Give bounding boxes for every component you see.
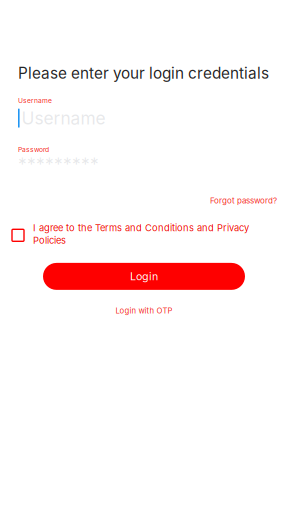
button[interactable]: I agree to the Terms and Conditions and … xyxy=(0,222,255,246)
staticText: Please enter your login credentials xyxy=(18,64,269,83)
staticText: I agree to the Terms and Conditions and … xyxy=(33,222,249,246)
staticText: Username xyxy=(18,97,52,105)
staticText: Login xyxy=(130,270,158,283)
button[interactable]: Login xyxy=(0,263,288,290)
staticText: Username xyxy=(22,108,106,129)
button[interactable]: Password xyxy=(0,146,288,175)
staticText: Login with OTP xyxy=(115,306,172,315)
staticText: Password xyxy=(18,146,49,154)
button[interactable]: Forgot password? xyxy=(210,196,288,205)
staticText: Forgot password? xyxy=(210,196,277,205)
button[interactable]: Username xyxy=(0,97,288,129)
button[interactable]: Login with OTP xyxy=(115,306,172,315)
staticText: ********* xyxy=(18,154,99,175)
